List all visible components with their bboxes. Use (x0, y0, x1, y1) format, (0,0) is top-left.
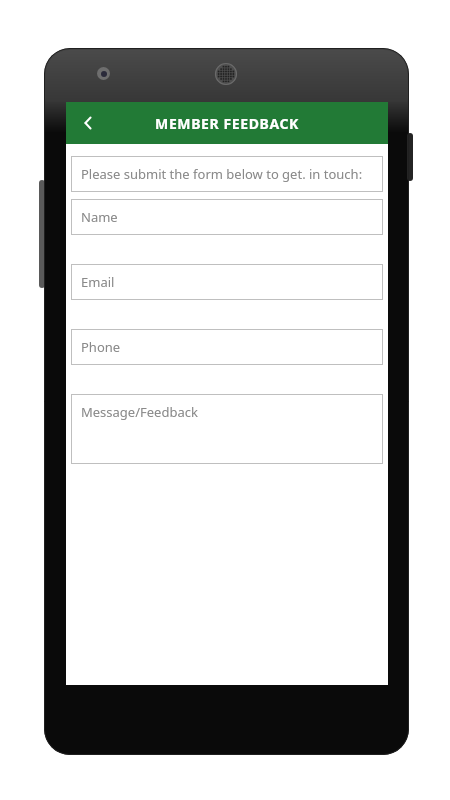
staticText: Email (81, 273, 115, 291)
staticText: MEMBER FEEDBACK (155, 114, 299, 133)
button[interactable]: Phone (71, 329, 383, 365)
button[interactable]: Name (71, 199, 383, 235)
button[interactable]: Please submit the form below to get. in … (71, 156, 383, 192)
button[interactable]: Back (66, 102, 110, 144)
staticText: Message/Feedback (81, 403, 198, 421)
staticText: Name (81, 208, 118, 226)
button[interactable]: Message/Feedback (71, 394, 383, 464)
staticText: Please submit the form below to get. in … (81, 165, 363, 183)
button[interactable]: Email (71, 264, 383, 300)
staticText: Phone (81, 338, 121, 356)
